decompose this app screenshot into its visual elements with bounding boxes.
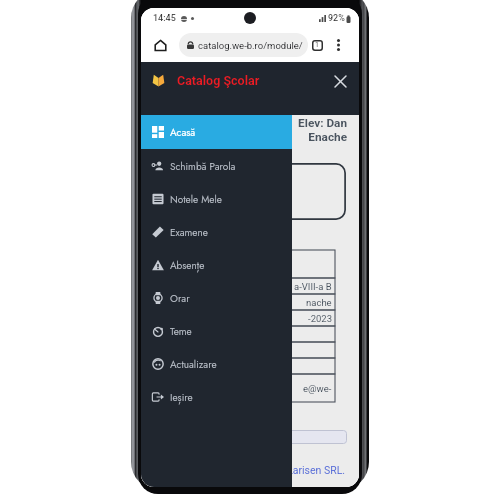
- button[interactable]: Teme: [141, 314, 292, 347]
- staticText: 1: [315, 41, 319, 49]
- staticText: Elev: Dan Enache: [267, 116, 347, 144]
- button[interactable]: Home: [150, 35, 170, 55]
- button[interactable]: Absențe: [141, 248, 292, 281]
- button[interactable]: More options: [331, 37, 346, 53]
- staticText: Teme: [170, 324, 192, 338]
- button[interactable]: Notele Mele: [141, 182, 292, 215]
- staticText: 92%: [328, 13, 345, 24]
- staticText: Notele Mele: [170, 192, 222, 206]
- button[interactable]: Close menu: [330, 71, 350, 91]
- staticText: catalog.we-b.ro/module/: [198, 40, 303, 51]
- staticText: Absențe: [170, 258, 205, 272]
- button[interactable]: Tabs: [308, 36, 326, 54]
- staticText: -2023: [308, 313, 332, 324]
- button[interactable]: Schimbă Parola: [141, 149, 292, 182]
- staticText: Actualizare: [170, 357, 217, 371]
- staticText: e@we-: [303, 383, 332, 394]
- staticText: Examene: [170, 225, 208, 239]
- staticText: Schimbă Parola: [170, 159, 236, 173]
- staticText: Ieșire: [170, 390, 193, 404]
- button[interactable]: Orar: [141, 281, 292, 314]
- staticText: Solutii Informatice Larisen SRL.: [199, 464, 346, 476]
- button[interactable]: catalog.we-b.ro/module/: [179, 33, 308, 57]
- staticText: Catalog Şcolar: [177, 73, 260, 88]
- button[interactable]: Examene: [141, 215, 292, 248]
- button[interactable]: Actualizare: [141, 347, 292, 380]
- staticText: Orar: [170, 291, 190, 305]
- staticText: a-VIII-a B: [294, 281, 332, 292]
- button[interactable]: Acasă: [141, 115, 292, 149]
- button[interactable]: Ieșire: [141, 380, 292, 413]
- staticText: Acasă: [170, 125, 196, 139]
- staticText: 14:45: [153, 13, 176, 24]
- staticText: nache: [306, 297, 332, 308]
